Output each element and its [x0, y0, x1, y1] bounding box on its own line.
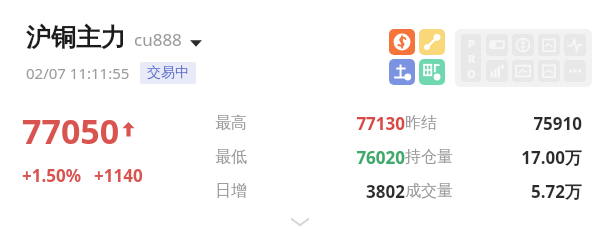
staticText: 日增 [215, 181, 247, 201]
staticText: 76020 [247, 146, 405, 169]
staticText: +1140 [94, 164, 143, 187]
button[interactable]: 成交量 [405, 176, 582, 206]
button[interactable]: Analysis [538, 60, 560, 82]
staticText: 17.00万 [453, 146, 582, 169]
staticText: P [468, 36, 475, 51]
button[interactable]: Switch contract [189, 38, 203, 48]
button[interactable]: Positions [389, 59, 415, 85]
button[interactable]: Chart [512, 60, 534, 82]
staticText: 持仓量 [405, 147, 453, 167]
button[interactable]: 最高 [215, 108, 405, 138]
staticText: 沪铜主力 [26, 22, 126, 53]
button[interactable]: 最低 [215, 142, 405, 172]
button[interactable]: More [564, 60, 586, 82]
button[interactable]: 日增 [215, 176, 405, 206]
staticText: 最高 [215, 113, 247, 133]
staticText: cu888 [134, 28, 182, 51]
button[interactable]: Ranking [486, 60, 508, 82]
button[interactable]: Expand [287, 215, 313, 229]
staticText: +1.50% [22, 164, 82, 187]
button[interactable]: Report [538, 34, 560, 56]
staticText: 75910 [437, 112, 582, 135]
staticText: 成交量 [405, 181, 453, 201]
button[interactable]: Trend line [419, 29, 445, 55]
button[interactable]: 昨结 [405, 108, 582, 138]
staticText: 02/07 11:11:55 [26, 63, 130, 83]
button[interactable]: 持仓量 [405, 142, 582, 172]
staticText: R [468, 51, 476, 66]
staticText: 77130 [247, 112, 405, 135]
button[interactable]: PRO [461, 34, 481, 82]
staticText: 最低 [215, 147, 247, 167]
button[interactable]: Funds [389, 29, 415, 55]
button[interactable]: Volatility [564, 34, 586, 56]
staticText: 昨结 [405, 113, 437, 133]
button[interactable]: 交易中 [140, 62, 196, 84]
button[interactable]: Capital [512, 34, 534, 56]
button[interactable]: Quote board [486, 34, 508, 56]
button[interactable]: Orders [419, 59, 445, 85]
staticText: 3802 [247, 180, 405, 203]
staticText: O [467, 66, 476, 81]
staticText: 5.72万 [453, 180, 582, 203]
staticText: 77050 [22, 108, 120, 154]
staticText: 交易中 [147, 64, 189, 82]
